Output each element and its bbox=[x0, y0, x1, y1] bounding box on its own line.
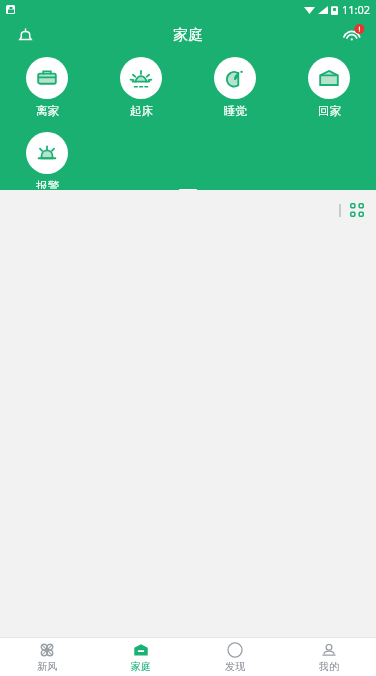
staticText: 11:02 bbox=[342, 2, 371, 17]
button[interactable]: 起床 bbox=[94, 56, 188, 119]
button[interactable]: 我的 bbox=[282, 638, 376, 676]
button[interactable]: 报警 bbox=[0, 131, 94, 190]
staticText: 发现 bbox=[225, 660, 245, 673]
button[interactable]: Switch to grid view bbox=[333, 199, 370, 221]
staticText: 新风 bbox=[37, 660, 57, 673]
button[interactable]: Network status bbox=[338, 20, 368, 50]
staticText: 睡觉 bbox=[224, 104, 247, 118]
staticText: 家庭 bbox=[131, 660, 151, 673]
staticText: 报警 bbox=[36, 179, 59, 189]
button[interactable]: 离家 bbox=[0, 56, 94, 119]
button[interactable]: 发现 bbox=[188, 638, 282, 676]
button[interactable]: 睡觉 bbox=[188, 56, 282, 119]
staticText: 起床 bbox=[130, 104, 153, 118]
button[interactable]: 家庭 bbox=[94, 638, 188, 676]
button[interactable]: 回家 bbox=[282, 56, 376, 119]
staticText: 回家 bbox=[318, 104, 341, 118]
button[interactable]: 新风 bbox=[0, 638, 94, 676]
button[interactable]: Notifications bbox=[10, 20, 40, 50]
staticText: 离家 bbox=[36, 104, 59, 118]
staticText: 家庭 bbox=[173, 26, 203, 45]
staticText: 我的 bbox=[319, 660, 339, 673]
